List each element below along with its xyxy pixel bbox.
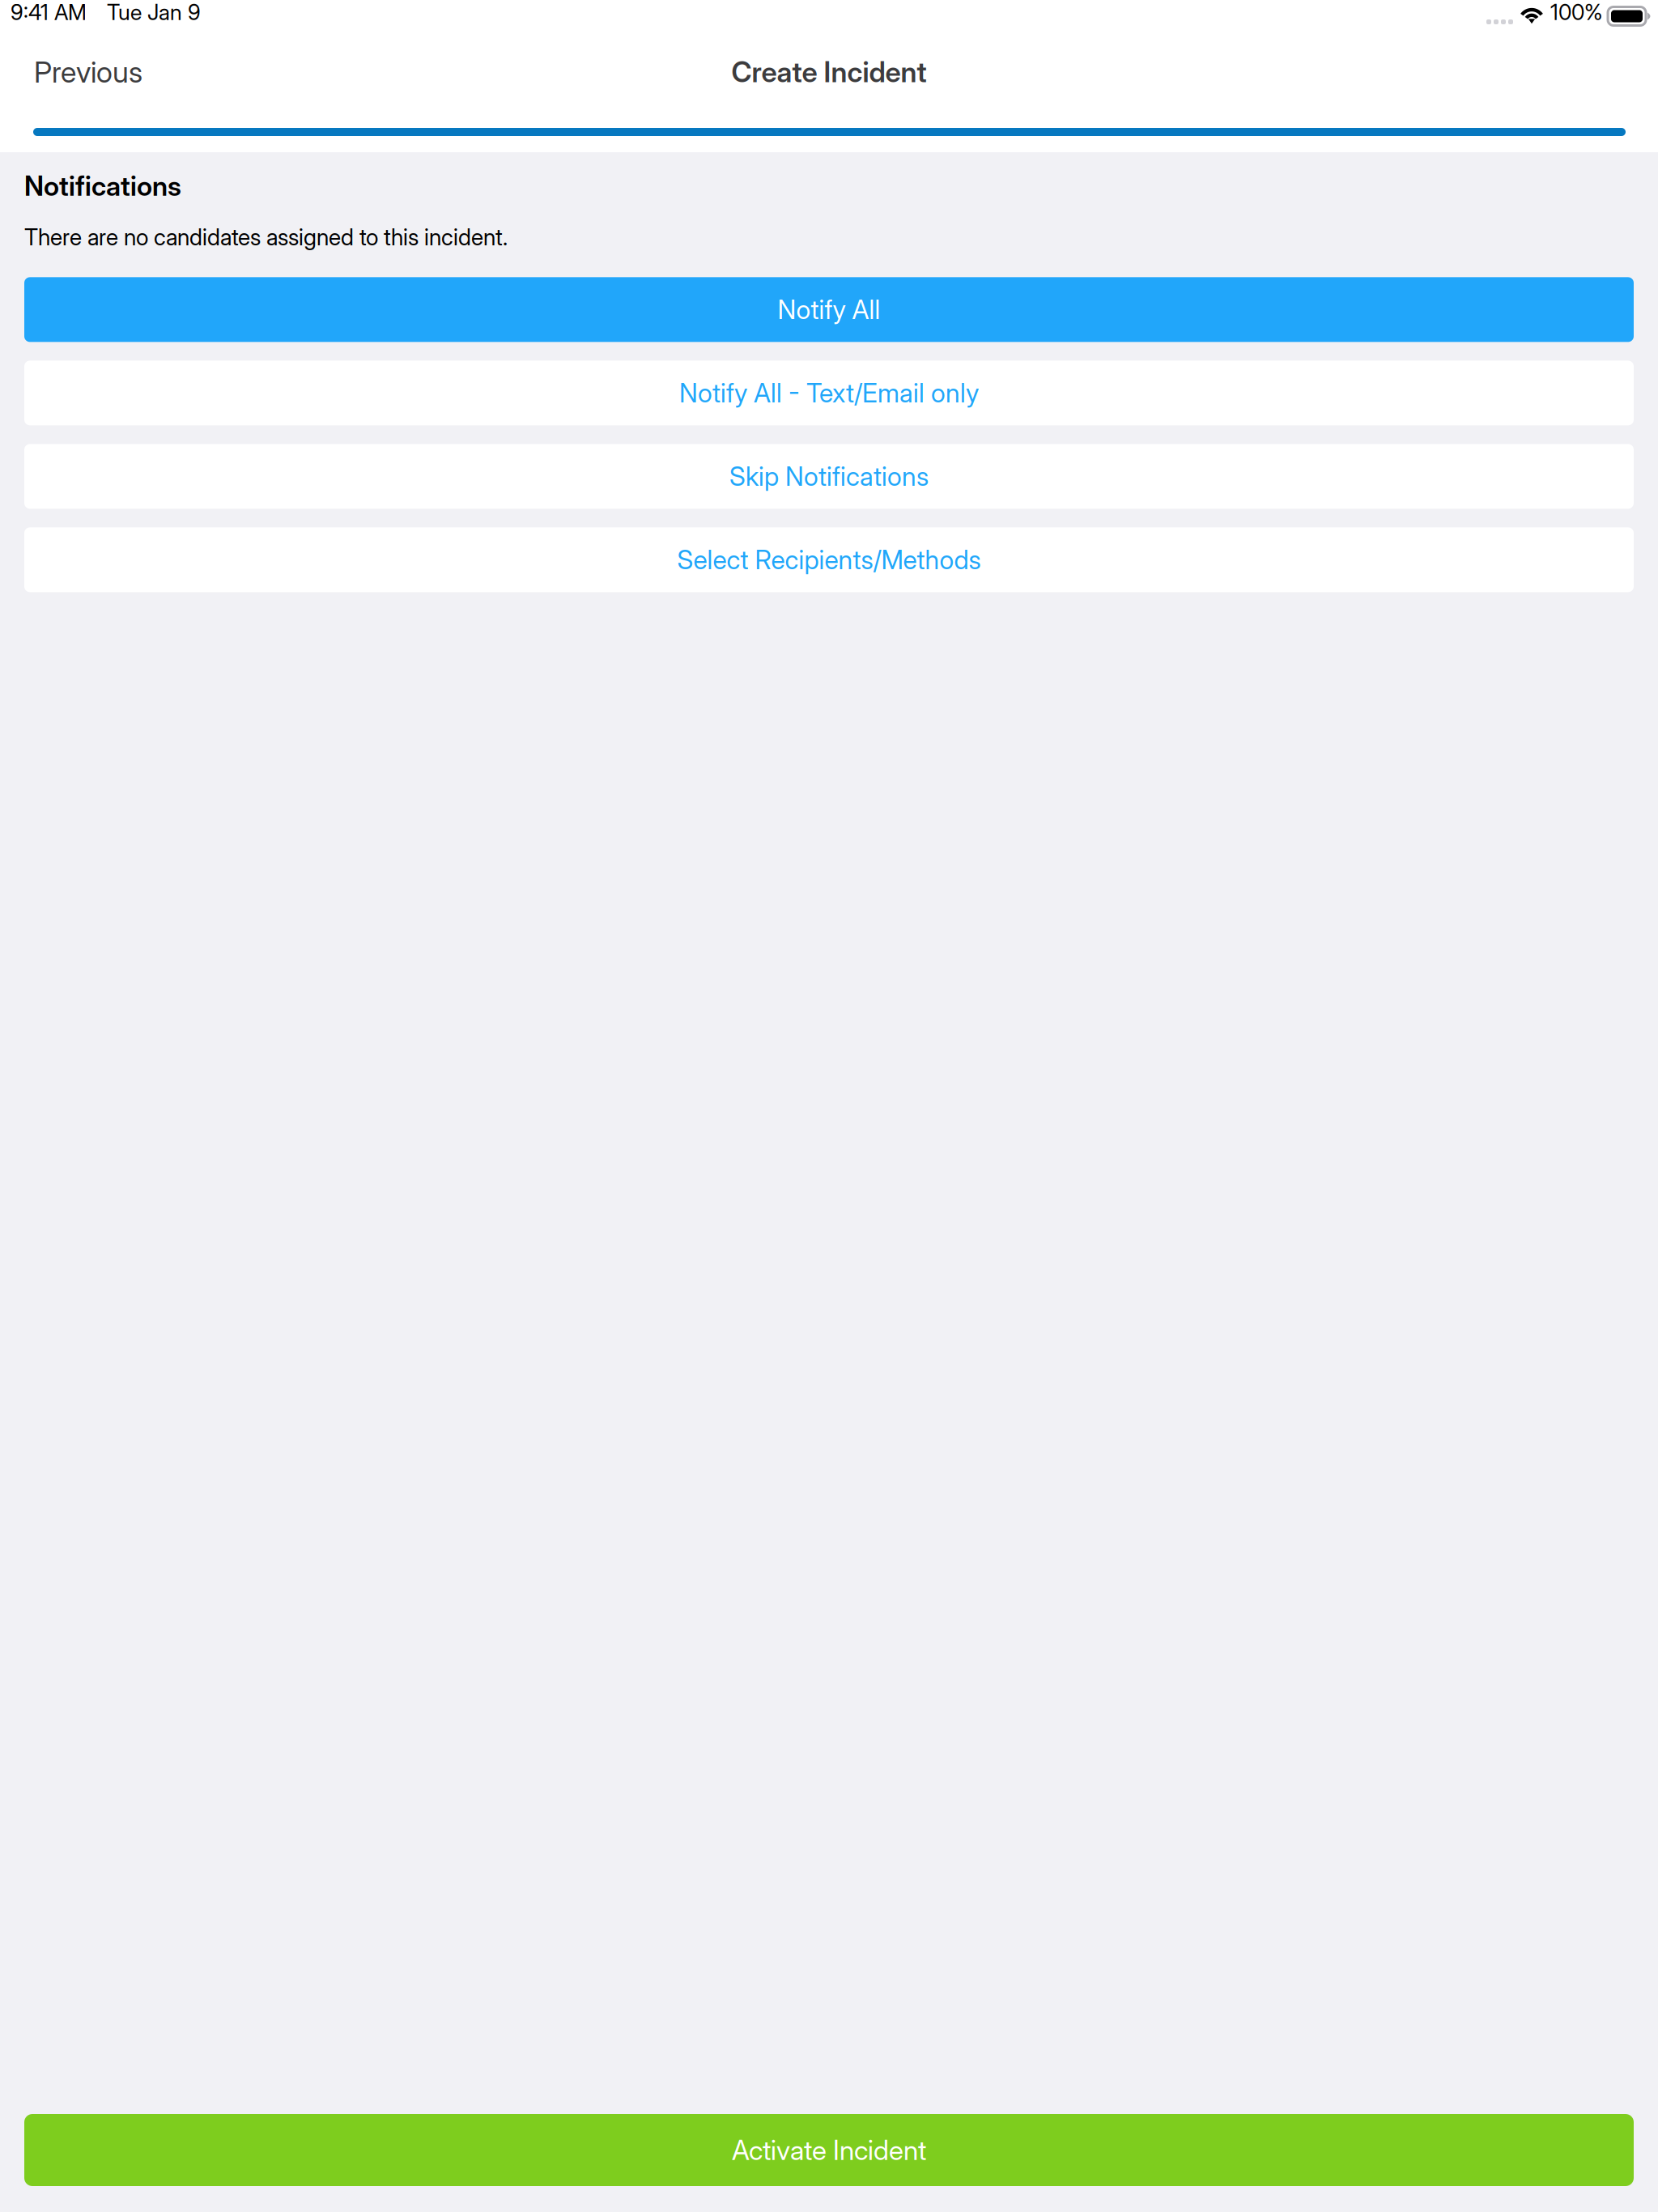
staticText: Select Recipients/Methods bbox=[677, 544, 981, 575]
staticText: Notifications bbox=[24, 170, 181, 202]
staticText: Notify All bbox=[778, 294, 880, 325]
button[interactable]: Skip Notifications bbox=[24, 444, 1634, 509]
staticText: Skip Notifications bbox=[729, 461, 929, 492]
staticText: Activate Incident bbox=[732, 2134, 926, 2166]
staticText: Previous bbox=[34, 55, 142, 89]
button[interactable]: Activate Incident bbox=[24, 2114, 1634, 2186]
staticText: 9:41 AM bbox=[11, 0, 87, 25]
staticText: Notify All - Text/Email only bbox=[679, 378, 979, 408]
staticText: Create Incident bbox=[731, 56, 927, 89]
button[interactable]: Select Recipients/Methods bbox=[24, 527, 1634, 592]
button[interactable]: Notify All bbox=[24, 277, 1634, 342]
staticText: There are no candidates assigned to this… bbox=[24, 224, 508, 250]
button[interactable]: Notify All - Text/Email only bbox=[24, 361, 1634, 425]
button[interactable]: Previous bbox=[0, 44, 167, 101]
staticText: 100% bbox=[1550, 0, 1603, 25]
staticText: Tue Jan 9 bbox=[107, 0, 201, 25]
